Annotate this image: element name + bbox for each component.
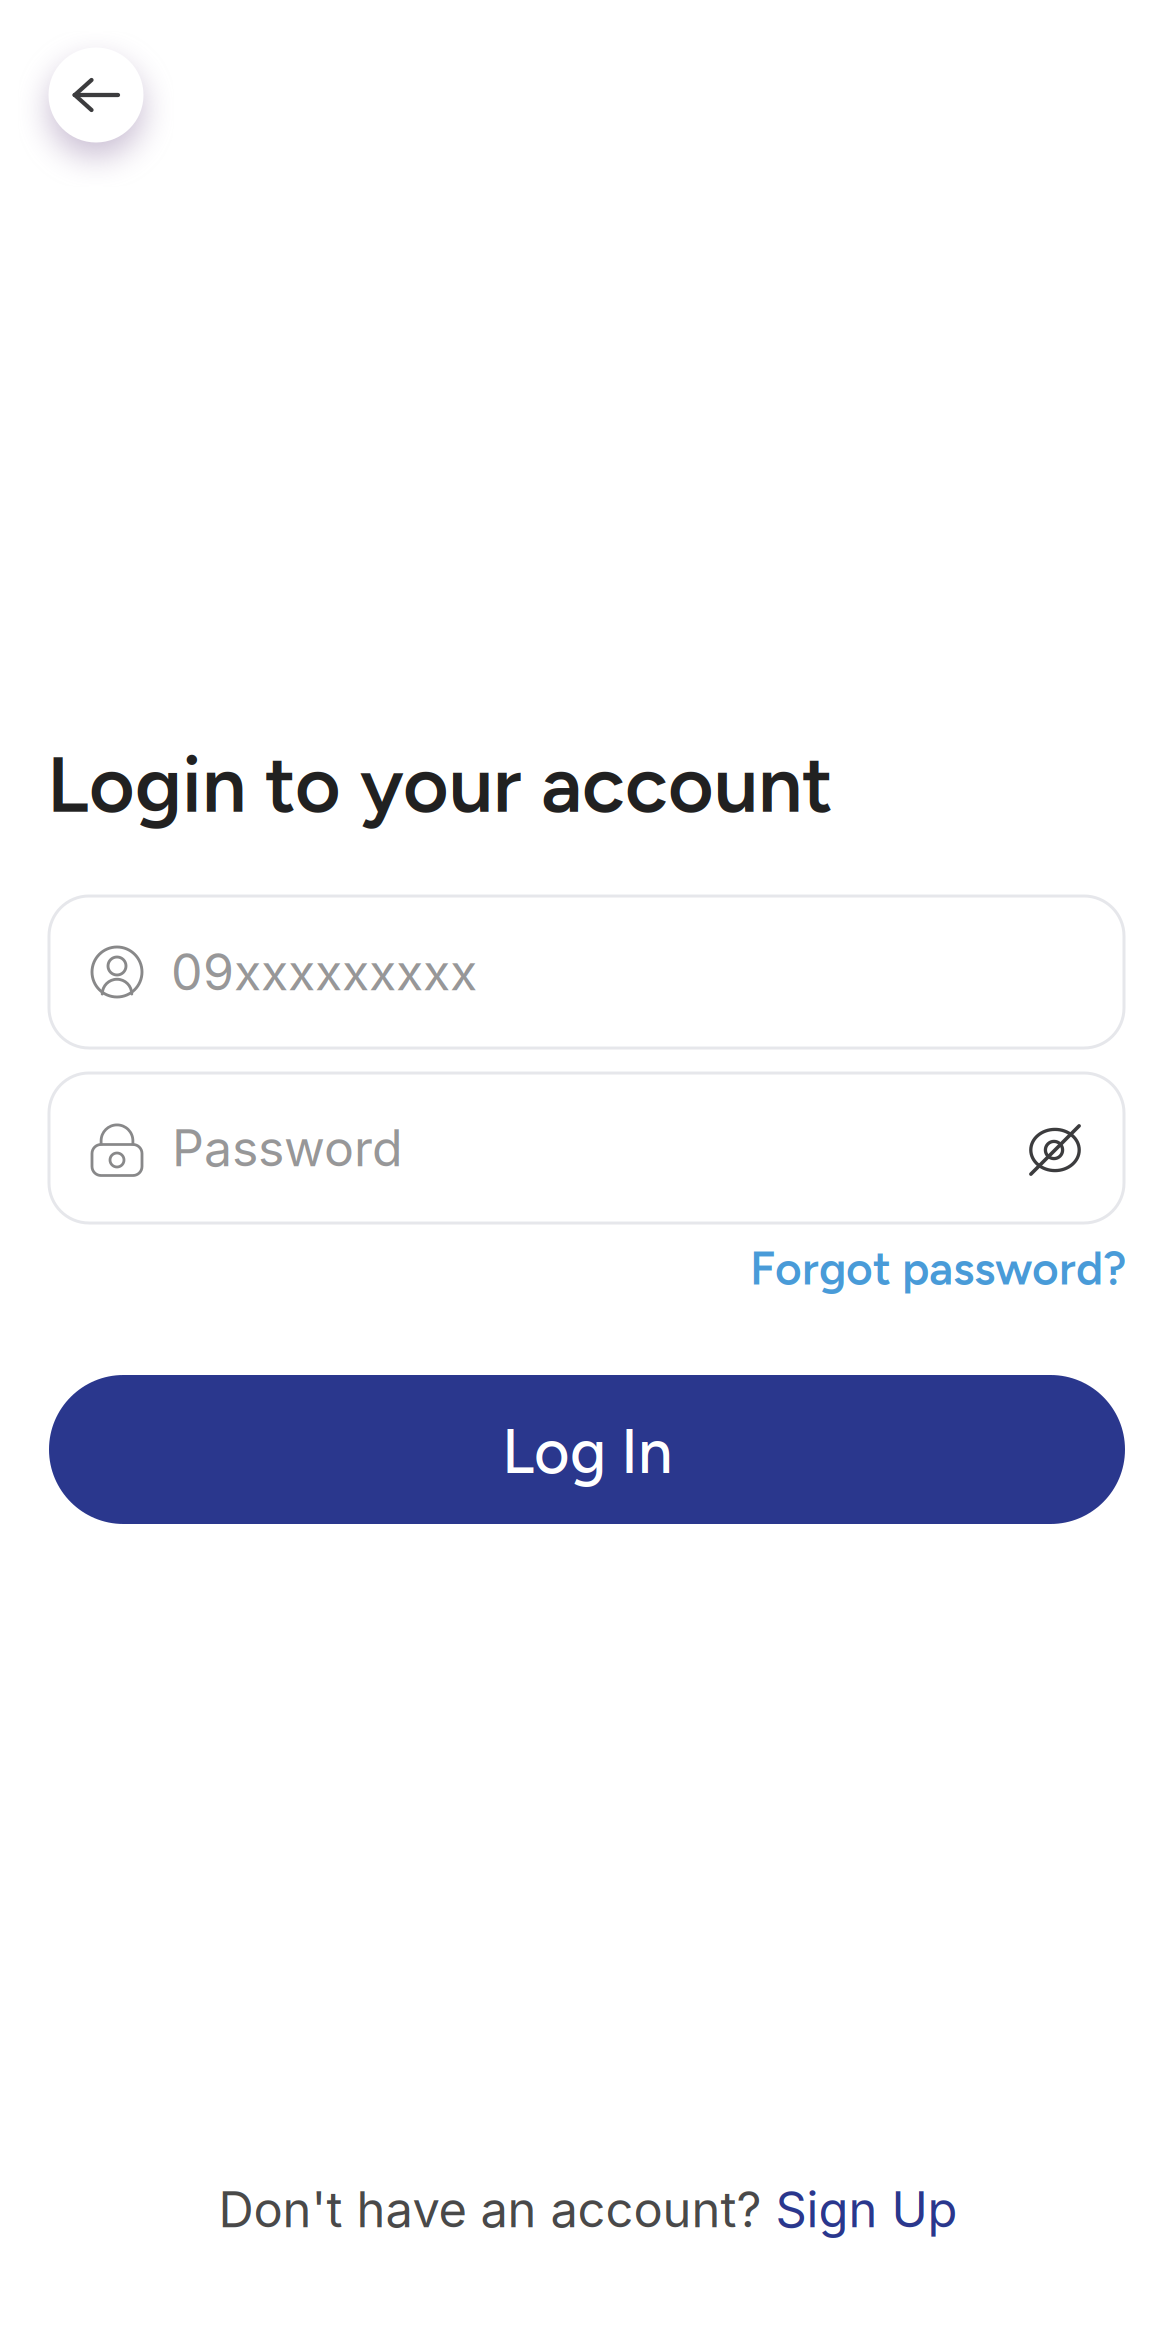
- button[interactable]: Show password: [986, 1073, 1124, 1223]
- button[interactable]: Sign Up: [775, 2180, 957, 2239]
- button[interactable]: Log In: [49, 1375, 1125, 1524]
- staticText: Password: [172, 1118, 403, 1178]
- staticText: Log In: [502, 1415, 672, 1488]
- staticText: Forgot password?: [750, 1241, 1126, 1296]
- staticText: Login to your account: [47, 737, 833, 831]
- button[interactable]: Forgot password?: [705, 1200, 1147, 1341]
- staticText: Sign Up: [775, 2180, 957, 2239]
- staticText: Don't have an account?: [218, 2180, 775, 2239]
- button[interactable]: Back: [31, 30, 161, 160]
- staticText: 09xxxxxxxxx: [171, 942, 477, 1002]
